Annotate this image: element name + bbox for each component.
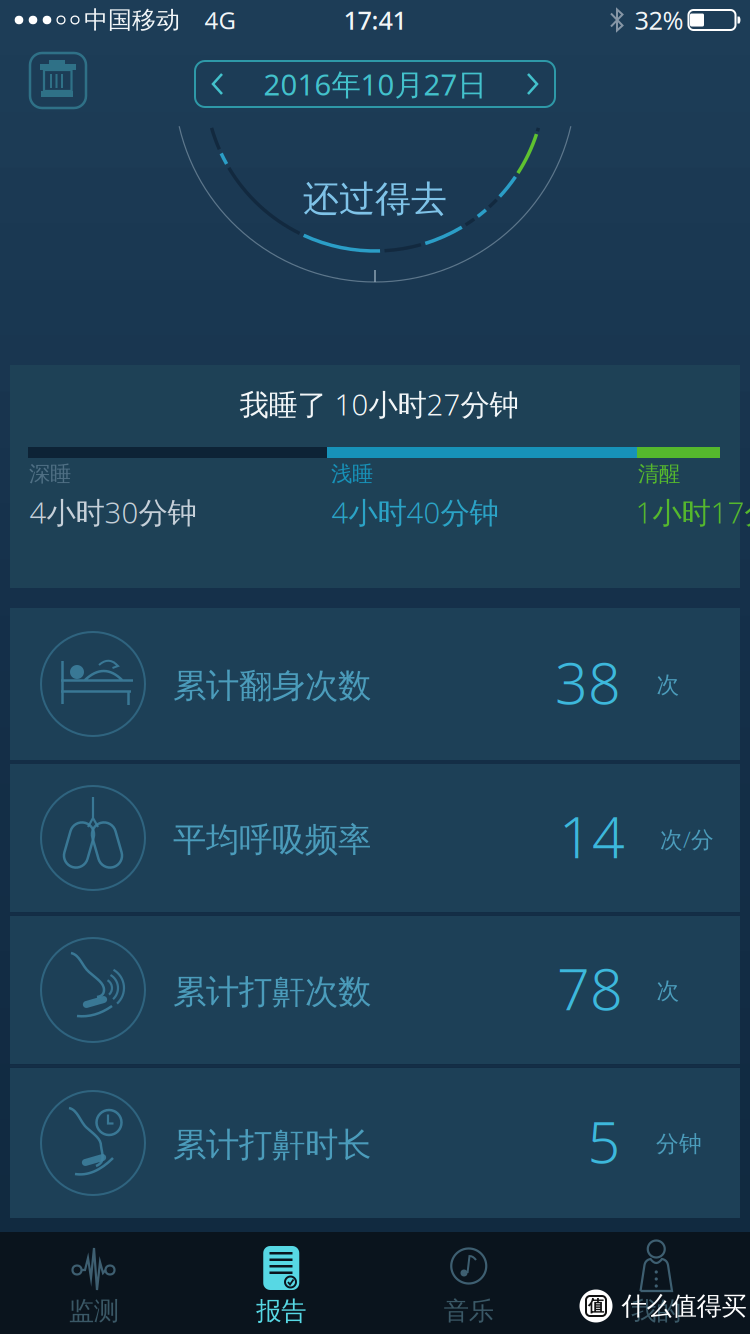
staticText: 累计打鼾次数 — [173, 971, 371, 1012]
staticText: 分钟 — [656, 1130, 702, 1158]
staticText: 4G — [204, 4, 235, 36]
staticText: 17:41 — [343, 3, 406, 37]
staticText: 什么值得买 — [621, 1290, 746, 1321]
staticText: 监测 — [69, 1295, 119, 1326]
staticText: 38 — [555, 644, 621, 720]
staticText: 中国移动 — [84, 5, 180, 35]
staticText: 累计翻身次数 — [173, 665, 371, 706]
staticText: 报告 — [256, 1295, 306, 1326]
staticText: 4小时40分钟 — [331, 492, 498, 531]
staticText: 平均呼吸频率 — [173, 819, 371, 860]
button[interactable]: 删除 — [30, 53, 86, 108]
staticText: 深睡 — [29, 461, 71, 487]
staticText: 78 — [557, 950, 623, 1026]
staticText: 4小时30分钟 — [29, 492, 196, 531]
staticText: 清醒 — [638, 461, 680, 487]
staticText: 1小时17分钟 — [635, 492, 750, 531]
button[interactable]: 监测 — [0, 1232, 187, 1334]
staticText: 浅睡 — [331, 461, 373, 487]
button[interactable]: 2016年10月27日 — [195, 61, 555, 107]
staticText: 次 — [656, 671, 679, 699]
staticText: 我睡了 10小时27分钟 — [239, 384, 518, 423]
button[interactable]: 报告 — [187, 1232, 375, 1334]
staticText: 我的 — [631, 1295, 681, 1326]
staticText: 次 — [656, 977, 679, 1005]
button[interactable]: 音乐 — [375, 1232, 562, 1334]
staticText: 值 — [588, 1296, 604, 1316]
staticText: 还过得去 — [303, 177, 447, 221]
staticText: 音乐 — [444, 1295, 494, 1326]
staticText: 5 — [587, 1103, 620, 1179]
staticText: 2016年10月27日 — [263, 64, 486, 103]
staticText: 累计打鼾时长 — [173, 1124, 371, 1165]
staticText: 14 — [559, 798, 625, 874]
button[interactable]: 我的 — [562, 1232, 750, 1334]
staticText: 次/分 — [660, 824, 714, 854]
staticText: 32% — [634, 3, 683, 37]
